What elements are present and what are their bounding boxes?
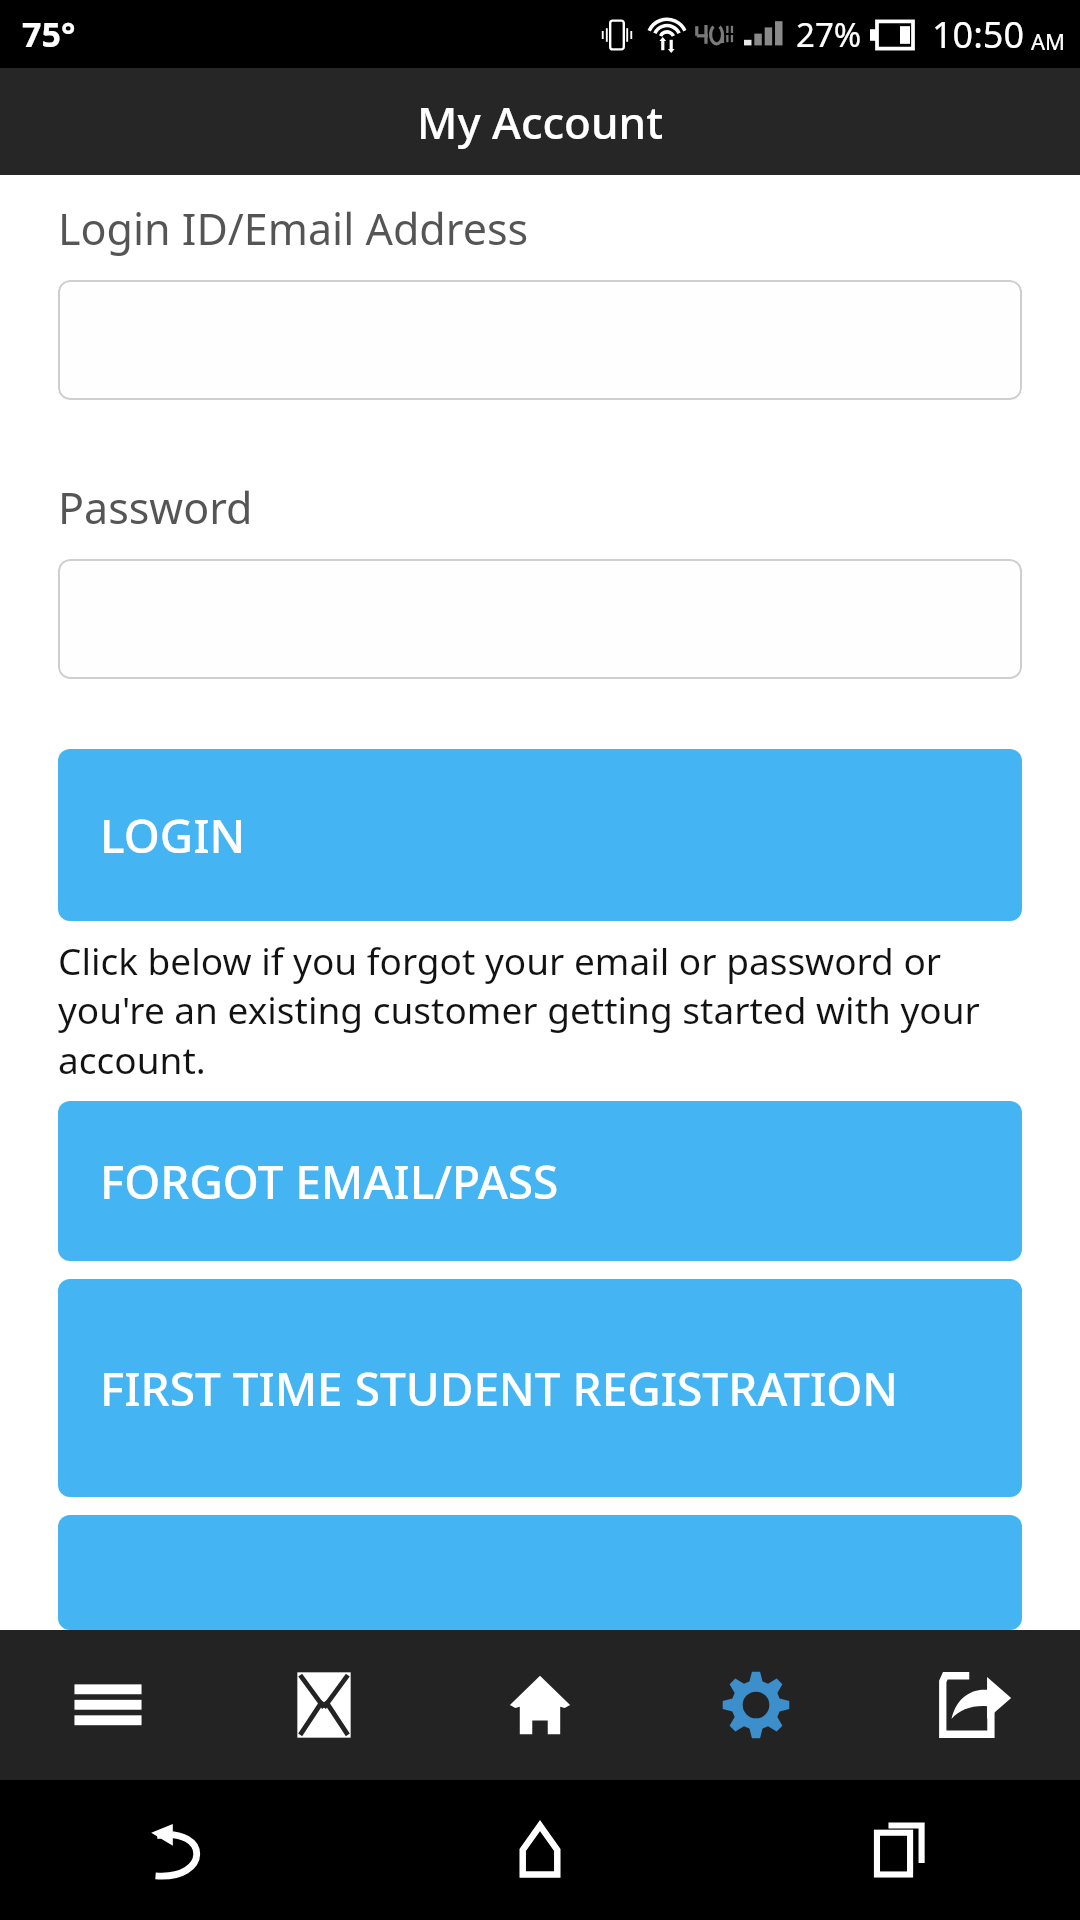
staticText: FIRST TIME STUDENT REGISTRATION xyxy=(100,1357,899,1420)
button[interactable] xyxy=(58,280,1022,400)
button[interactable]: Menu xyxy=(0,1630,216,1780)
staticText: Click below if you forgot your email or … xyxy=(58,935,1022,1085)
button[interactable] xyxy=(58,1515,1022,1630)
staticText: LOGIN xyxy=(100,804,246,867)
button[interactable]: Messages xyxy=(216,1630,432,1780)
button[interactable]: Share xyxy=(864,1630,1080,1780)
staticText: AM xyxy=(1031,26,1066,56)
button[interactable]: Recents xyxy=(720,1780,1080,1920)
staticText: 10:50 xyxy=(932,10,1025,59)
button[interactable]: FORGOT EMAIL/PASS xyxy=(58,1101,1022,1261)
staticText: Login ID/Email Address xyxy=(58,199,529,258)
staticText: Password xyxy=(58,478,253,537)
staticText: My Account xyxy=(417,92,664,152)
button[interactable]: Back xyxy=(0,1780,360,1920)
button[interactable]: LOGIN xyxy=(58,749,1022,921)
button[interactable] xyxy=(58,559,1022,679)
staticText: 27% xyxy=(796,12,862,57)
button[interactable]: Home xyxy=(432,1630,648,1780)
staticText: FORGOT EMAIL/PASS xyxy=(100,1150,559,1213)
button[interactable]: Home xyxy=(360,1780,720,1920)
staticText: 75° xyxy=(22,11,76,57)
button[interactable]: FIRST TIME STUDENT REGISTRATION xyxy=(58,1279,1022,1497)
button[interactable]: Settings xyxy=(648,1630,864,1780)
